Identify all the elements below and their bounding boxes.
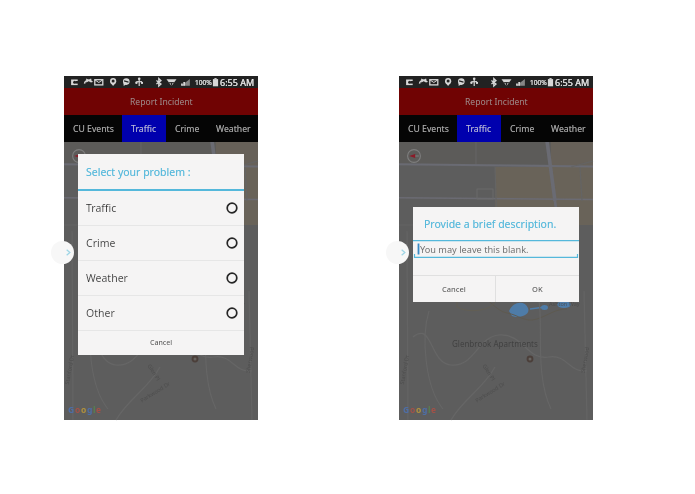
staticText: Weather <box>216 123 251 135</box>
staticText: CU Events <box>408 123 449 135</box>
button[interactable]: Weather <box>78 261 244 295</box>
staticText: Sherwood <box>244 346 255 373</box>
staticText: l <box>93 404 96 416</box>
staticText: Glen Pl <box>146 363 162 382</box>
staticText: 100% <box>195 78 212 87</box>
staticText: Crime <box>86 236 116 250</box>
staticText: l <box>428 404 431 416</box>
staticText: o <box>416 404 422 416</box>
staticText: Ashton Way <box>214 300 245 307</box>
staticText: Stanford Dr <box>63 354 75 385</box>
button[interactable]: Cancel <box>413 276 495 302</box>
staticText: g <box>87 404 93 416</box>
staticText: Crime <box>510 123 535 135</box>
staticText: You may leave this blank. <box>420 243 529 256</box>
staticText: o <box>410 404 416 416</box>
button[interactable]: Weather <box>208 115 258 142</box>
staticText: 6:55 AM <box>220 76 255 88</box>
staticText: Glen Pl <box>481 363 497 382</box>
button[interactable]: Traffic <box>78 191 244 225</box>
button[interactable]: Traffic <box>122 115 166 142</box>
staticText: Glenbrook Apartments <box>452 338 538 349</box>
staticText: o <box>81 404 87 416</box>
button[interactable]: CU Events <box>399 115 457 142</box>
staticText: Crime <box>175 123 200 135</box>
button[interactable]: CU Events <box>64 115 122 142</box>
button[interactable]: Crime <box>501 115 543 142</box>
button[interactable]: Open drawer <box>386 241 409 264</box>
button[interactable]: Compass, reset orientation <box>407 149 421 163</box>
button[interactable]: Cancel <box>78 331 244 355</box>
button[interactable]: Traffic <box>457 115 501 142</box>
staticText: o <box>75 404 81 416</box>
button[interactable]: Compass, reset orientation <box>72 149 86 163</box>
staticText: g <box>422 404 428 416</box>
staticText: Stanford Dr <box>398 354 410 385</box>
staticText: Glenbrook Apartments <box>117 338 203 349</box>
staticText: Provide a brief description. <box>424 217 557 231</box>
staticText: Ashton Way <box>549 300 580 307</box>
staticText: G <box>403 404 410 416</box>
staticText: Sherwood <box>579 346 590 373</box>
staticText: Select your problem : <box>86 165 191 179</box>
staticText: Weather <box>551 123 586 135</box>
button[interactable]: Other <box>78 296 244 330</box>
staticText: Traffic <box>86 201 117 215</box>
staticText: G <box>68 404 75 416</box>
staticText: Cancel <box>442 284 466 294</box>
staticText: e <box>96 404 102 416</box>
staticText: Report Incident <box>130 96 193 108</box>
staticText: Report Incident <box>465 96 528 108</box>
button[interactable]: OK <box>496 276 579 302</box>
staticText: 6:55 AM <box>555 76 590 88</box>
button[interactable]: Crime <box>78 226 244 260</box>
staticText: e <box>431 404 437 416</box>
staticText: Traffic <box>131 123 157 135</box>
button[interactable]: Weather <box>543 115 593 142</box>
staticText: CU Events <box>73 123 114 135</box>
staticText: Cancel <box>150 338 173 348</box>
staticText: Other <box>86 306 115 320</box>
button[interactable]: Open drawer <box>51 241 74 264</box>
button[interactable]: Crime <box>166 115 208 142</box>
staticText: Traffic <box>466 123 492 135</box>
staticText: 100% <box>530 78 547 87</box>
staticText: Weather <box>86 271 128 285</box>
staticText: OK <box>532 284 543 294</box>
